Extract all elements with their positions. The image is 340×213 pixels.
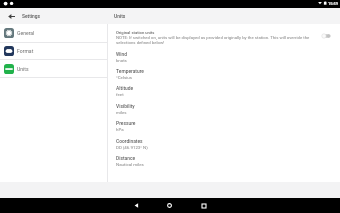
- staticText: knots: [116, 58, 127, 63]
- staticText: Wind: [116, 51, 128, 57]
- button[interactable]: Visibility: [108, 103, 340, 120]
- staticText: °Celsius: [116, 75, 132, 80]
- staticText: feet: [116, 92, 124, 97]
- button[interactable]: Pressure: [108, 120, 340, 137]
- staticText: hPa: [116, 127, 124, 132]
- button[interactable]: Units: [0, 60, 107, 77]
- staticText: Visibility: [116, 103, 135, 109]
- staticText: Settings: [22, 13, 41, 19]
- button[interactable]: Back: [130, 199, 143, 212]
- button[interactable]: Home: [163, 199, 176, 212]
- staticText: NOTE: If switched on, units will be disp…: [116, 35, 319, 45]
- button[interactable]: Distance: [108, 155, 340, 172]
- staticText: Original station units: [116, 30, 155, 35]
- staticText: General: [17, 30, 35, 36]
- button[interactable]: Original station units toggle: [321, 33, 330, 39]
- button[interactable]: General: [0, 24, 107, 42]
- button[interactable]: Recent apps: [197, 199, 210, 212]
- button[interactable]: Altitude: [108, 85, 340, 102]
- staticText: Nautical miles: [116, 162, 144, 167]
- staticText: Temperature: [116, 68, 144, 74]
- staticText: Format: [17, 48, 34, 54]
- staticText: Units: [17, 66, 29, 72]
- button[interactable]: Temperature: [108, 68, 340, 85]
- staticText: Units: [114, 13, 126, 19]
- button[interactable]: Coordinates: [108, 138, 340, 155]
- staticText: Distance: [116, 155, 136, 161]
- button[interactable]: Format: [0, 43, 107, 59]
- staticText: Pressure: [116, 120, 136, 126]
- staticText: Coordinates: [116, 138, 143, 144]
- staticText: DD (46.9123° N): [116, 145, 148, 150]
- button[interactable]: Back: [6, 11, 17, 22]
- button[interactable]: Wind: [108, 51, 340, 68]
- staticText: Altitude: [116, 85, 134, 91]
- staticText: 15:59: [328, 1, 338, 6]
- staticText: miles: [116, 110, 127, 115]
- button[interactable]: Original station units: [108, 30, 340, 45]
